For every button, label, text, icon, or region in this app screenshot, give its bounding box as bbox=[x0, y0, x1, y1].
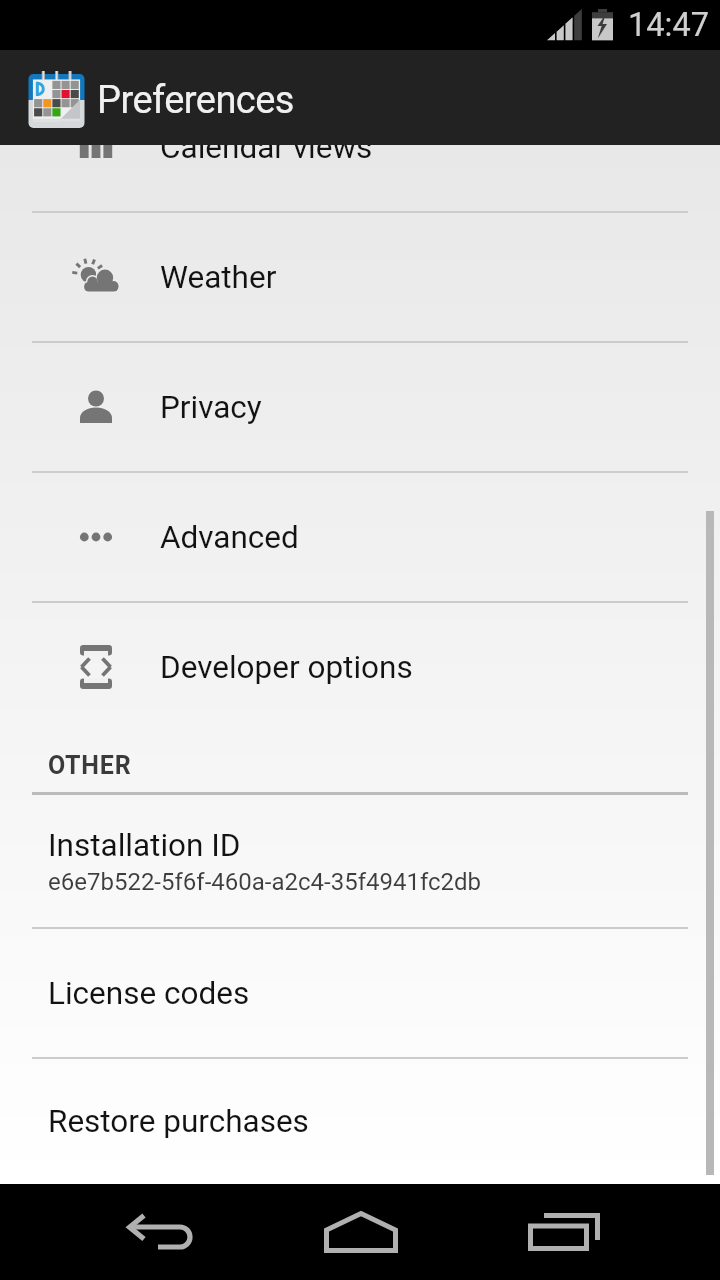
staticText: Developer options bbox=[160, 649, 413, 686]
button[interactable]: Recent apps bbox=[480, 1184, 720, 1280]
button[interactable]: Up bbox=[28, 69, 294, 126]
staticText: Installation ID bbox=[48, 827, 241, 864]
button[interactable]: Restore purchases bbox=[0, 1059, 720, 1184]
button[interactable]: License codes bbox=[0, 929, 720, 1057]
staticText: Advanced bbox=[160, 519, 299, 556]
staticText: e6e7b522-5f6f-460a-a2c4-35f4941fc2db bbox=[48, 868, 482, 896]
button[interactable]: Weather bbox=[0, 213, 720, 341]
button[interactable]: Home bbox=[280, 1184, 480, 1280]
staticText: 14:47 bbox=[628, 6, 709, 44]
staticText: Restore purchases bbox=[48, 1103, 309, 1140]
button[interactable]: Installation ID bbox=[0, 795, 720, 927]
button[interactable]: Developer options bbox=[0, 603, 720, 731]
staticText: Privacy bbox=[160, 389, 262, 426]
staticText: Weather bbox=[160, 259, 277, 296]
button[interactable]: Calendar views bbox=[0, 145, 720, 211]
button[interactable]: Back bbox=[0, 1184, 280, 1280]
button[interactable]: Privacy bbox=[0, 343, 720, 471]
button[interactable]: Advanced bbox=[0, 473, 720, 601]
staticText: License codes bbox=[48, 975, 250, 1012]
staticText: Preferences bbox=[97, 78, 294, 123]
staticText: OTHER bbox=[48, 751, 132, 780]
staticText: Calendar views bbox=[160, 145, 373, 166]
